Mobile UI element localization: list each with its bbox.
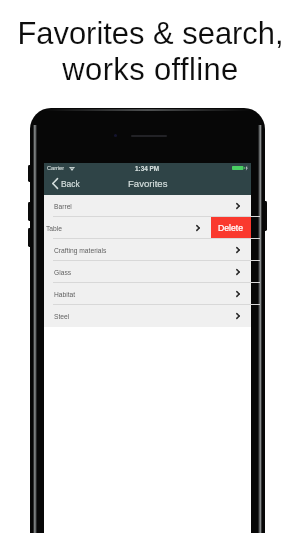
staticText: Glass: [54, 269, 72, 276]
staticText: works offline: [62, 52, 239, 87]
other: Open Steel: [236, 313, 240, 319]
button[interactable]: Delete: [211, 217, 251, 239]
button[interactable]: Table: [44, 217, 251, 239]
staticText: Habitat: [54, 291, 76, 298]
staticText: Table: [46, 225, 62, 232]
staticText: Barrel: [54, 203, 72, 210]
other: Open Barrel: [236, 203, 240, 209]
other: Open Habitat: [236, 291, 240, 297]
staticText: 1:34 PM: [135, 165, 160, 172]
other: Open Crafting materials: [236, 247, 240, 253]
staticText: Crafting materials: [54, 247, 107, 254]
staticText: Favorites & search,: [17, 16, 284, 51]
staticText: Carrier: [47, 165, 65, 171]
button[interactable]: Glass: [44, 261, 251, 283]
staticText: Steel: [54, 313, 70, 320]
staticText: Favorites: [128, 178, 168, 189]
other: Open Table: [196, 225, 200, 231]
staticText: Back: [61, 179, 80, 188]
button[interactable]: Steel: [44, 305, 251, 327]
other: Open Glass: [236, 269, 240, 275]
button[interactable]: Crafting materials: [44, 239, 251, 261]
staticText: Delete: [218, 223, 244, 233]
button[interactable]: Barrel: [44, 195, 251, 217]
button[interactable]: Back: [52, 173, 77, 195]
button[interactable]: Habitat: [44, 283, 251, 305]
